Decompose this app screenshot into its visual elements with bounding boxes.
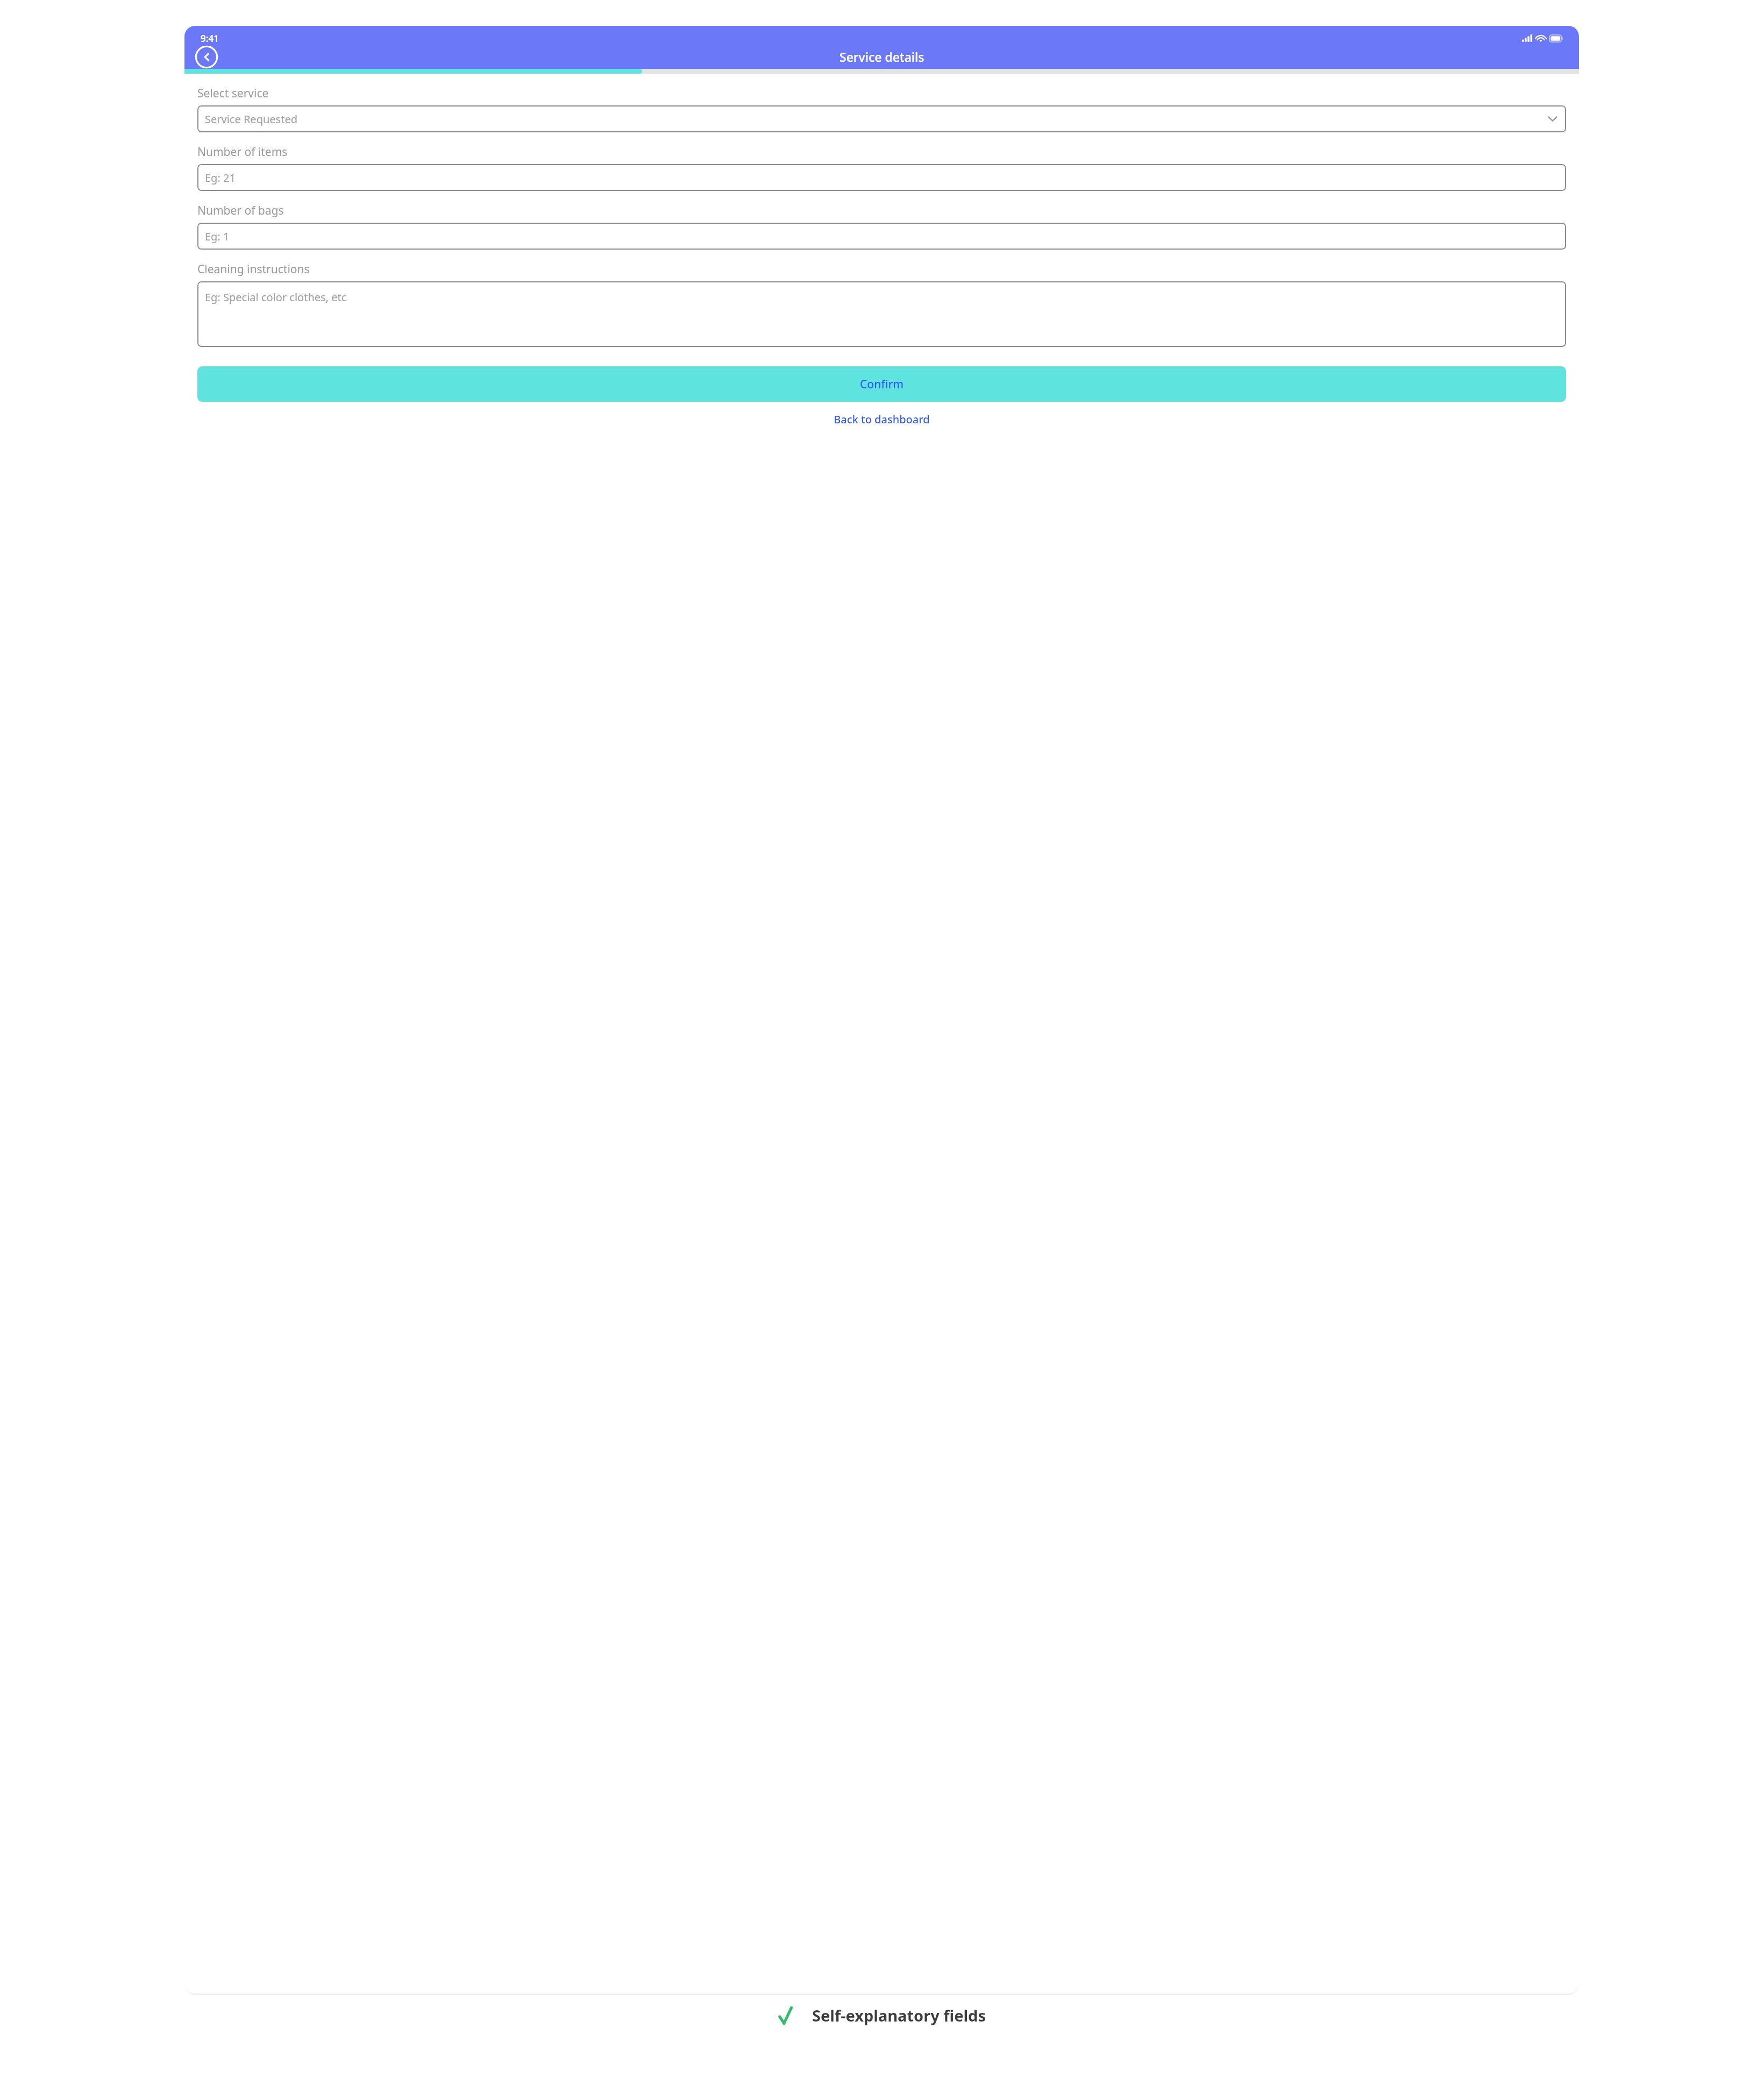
button[interactable]: Eg: 21 [197, 164, 1566, 191]
staticText: Service details [840, 48, 924, 65]
staticText: Confirm [860, 377, 904, 392]
button[interactable]: Eg: Special color clothes, etc [197, 281, 1566, 347]
button[interactable]: Back to dashboard [197, 408, 1566, 430]
staticText: Eg: Special color clothes, etc [205, 290, 347, 304]
staticText: Number of bags [197, 203, 284, 218]
staticText: Back to dashboard [834, 412, 930, 427]
staticText: 9:41 [201, 32, 219, 45]
staticText: Eg: 21 [205, 171, 236, 185]
button[interactable]: Back [195, 45, 218, 69]
staticText: Number of items [197, 144, 288, 160]
staticText: Eg: 1 [205, 229, 230, 244]
button[interactable]: Confirm [197, 366, 1566, 402]
button[interactable]: Eg: 1 [197, 223, 1566, 250]
staticText: Select service [197, 86, 269, 101]
staticText: Cleaning instructions [197, 261, 310, 277]
staticText: Service Requested [205, 112, 297, 126]
button[interactable]: Service Requested [197, 105, 1566, 132]
staticText: Self-explanatory fields [812, 2005, 986, 2026]
